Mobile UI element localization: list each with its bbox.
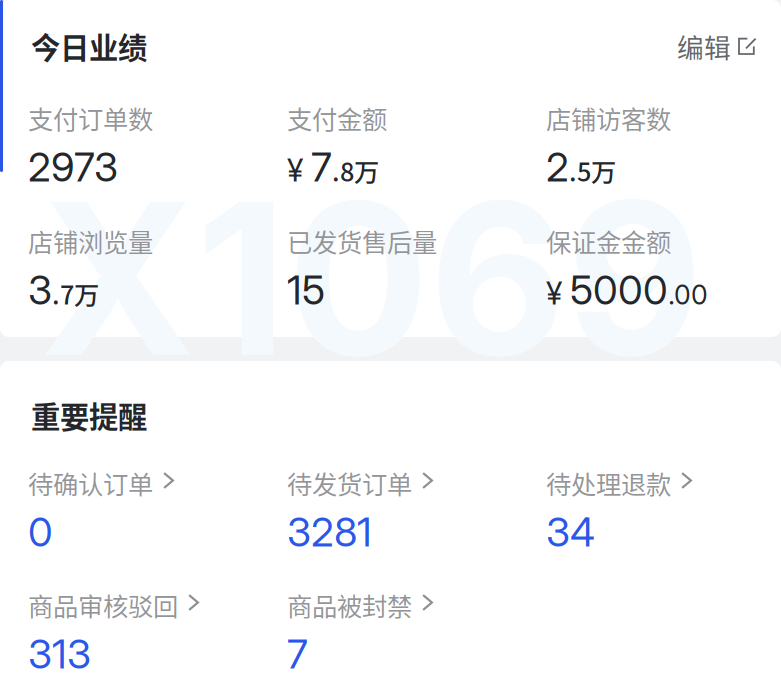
- staticText: .8万: [332, 152, 379, 189]
- staticText: 编辑: [677, 27, 731, 65]
- staticText: 重要提醒: [31, 394, 147, 436]
- button[interactable]: 商品审核驳回: [28, 592, 287, 670]
- staticText: 5000: [570, 266, 668, 314]
- button[interactable]: 待处理退款: [546, 470, 781, 548]
- staticText: 待处理退款: [546, 465, 671, 501]
- staticText: 商品审核驳回: [28, 587, 178, 623]
- button[interactable]: 待发货订单: [287, 470, 546, 548]
- staticText: 2: [546, 143, 569, 191]
- button[interactable]: 待确认订单: [28, 470, 287, 548]
- staticText: 34: [546, 508, 595, 556]
- staticText: 保证金金额: [546, 223, 671, 259]
- button[interactable]: 编辑: [677, 29, 781, 63]
- staticText: ¥: [287, 152, 303, 189]
- staticText: 15: [287, 266, 325, 314]
- staticText: ¥: [546, 275, 562, 312]
- staticText: 商品被封禁: [287, 587, 412, 623]
- staticText: .7万: [52, 275, 99, 312]
- staticText: .5万: [569, 152, 616, 189]
- button[interactable]: 商品被封禁: [287, 592, 546, 670]
- staticText: 待确认订单: [28, 465, 153, 501]
- staticText: 店铺访客数: [546, 100, 671, 136]
- staticText: 支付金额: [287, 100, 387, 136]
- staticText: 313: [28, 630, 91, 678]
- staticText: 已发货售后量: [287, 223, 437, 259]
- staticText: 3: [28, 266, 52, 314]
- staticText: 7: [311, 143, 332, 191]
- staticText: 7: [287, 630, 308, 678]
- staticText: 今日业绩: [31, 25, 147, 67]
- staticText: .00: [668, 279, 708, 311]
- staticText: 0: [28, 508, 53, 556]
- staticText: X1069: [40, 151, 703, 405]
- staticText: 待发货订单: [287, 465, 412, 501]
- staticText: 2973: [28, 143, 118, 191]
- staticText: 支付订单数: [28, 100, 153, 136]
- staticText: 店铺浏览量: [28, 223, 153, 259]
- staticText: 3281: [287, 508, 372, 556]
